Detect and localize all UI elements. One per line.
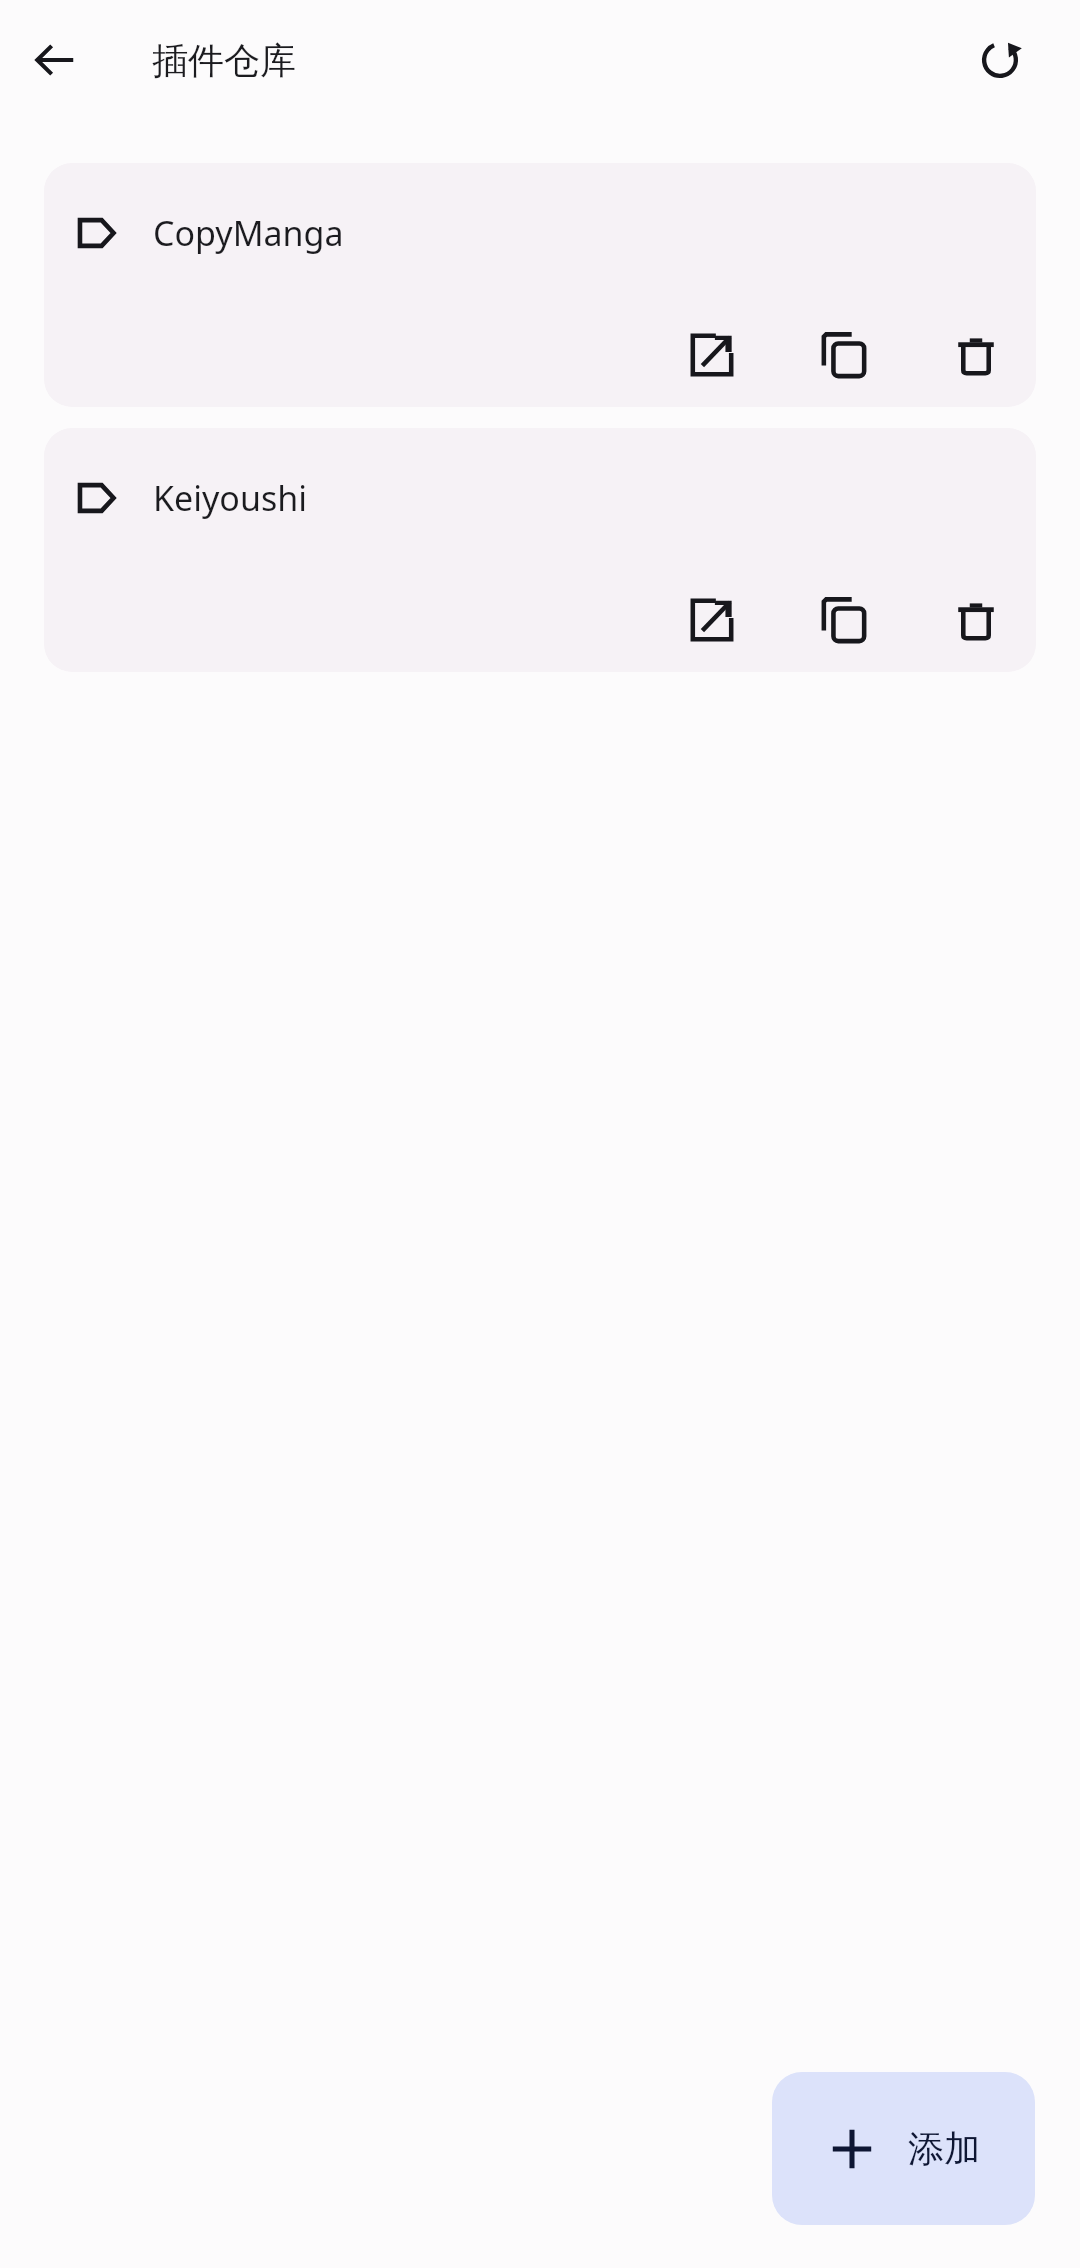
staticText: CopyManga [153, 210, 344, 256]
button[interactable]: Delete [940, 584, 1012, 656]
staticText: 添加 [908, 2126, 980, 2171]
button[interactable]: Back [19, 24, 91, 96]
staticText: 插件仓库 [152, 38, 296, 83]
staticText: Keiyoushi [153, 475, 307, 521]
button[interactable]: Keiyoushi [44, 428, 1036, 672]
button[interactable]: 添加 [772, 2072, 1035, 2225]
button[interactable]: Refresh [964, 24, 1036, 96]
button[interactable]: Open in browser [676, 319, 748, 391]
button[interactable]: Delete [940, 319, 1012, 391]
button[interactable]: CopyManga [44, 163, 1036, 407]
button[interactable]: Copy URL [808, 584, 880, 656]
button[interactable]: Open in browser [676, 584, 748, 656]
button[interactable]: Copy URL [808, 319, 880, 391]
